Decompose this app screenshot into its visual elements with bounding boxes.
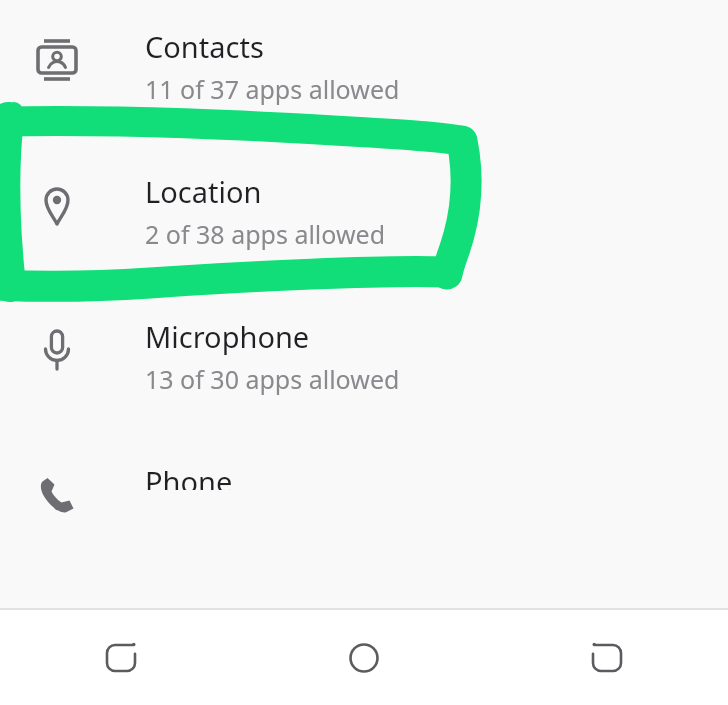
button[interactable]: Home <box>242 610 485 705</box>
staticText: 11 of 37 apps allowed <box>145 72 400 106</box>
staticText: 2 of 38 apps allowed <box>145 217 386 251</box>
button[interactable]: Recent apps <box>0 610 242 705</box>
staticText: Contacts <box>145 27 264 66</box>
button[interactable]: Contacts <box>0 17 728 162</box>
staticText: Phone <box>145 462 233 490</box>
button[interactable]: Microphone <box>0 307 728 452</box>
button[interactable]: Back <box>485 610 728 705</box>
staticText: 13 of 30 apps allowed <box>145 362 400 396</box>
button[interactable]: Phone <box>0 452 728 480</box>
staticText: Microphone <box>145 317 310 356</box>
staticText: Location <box>145 172 262 211</box>
button[interactable]: Location <box>0 162 728 307</box>
